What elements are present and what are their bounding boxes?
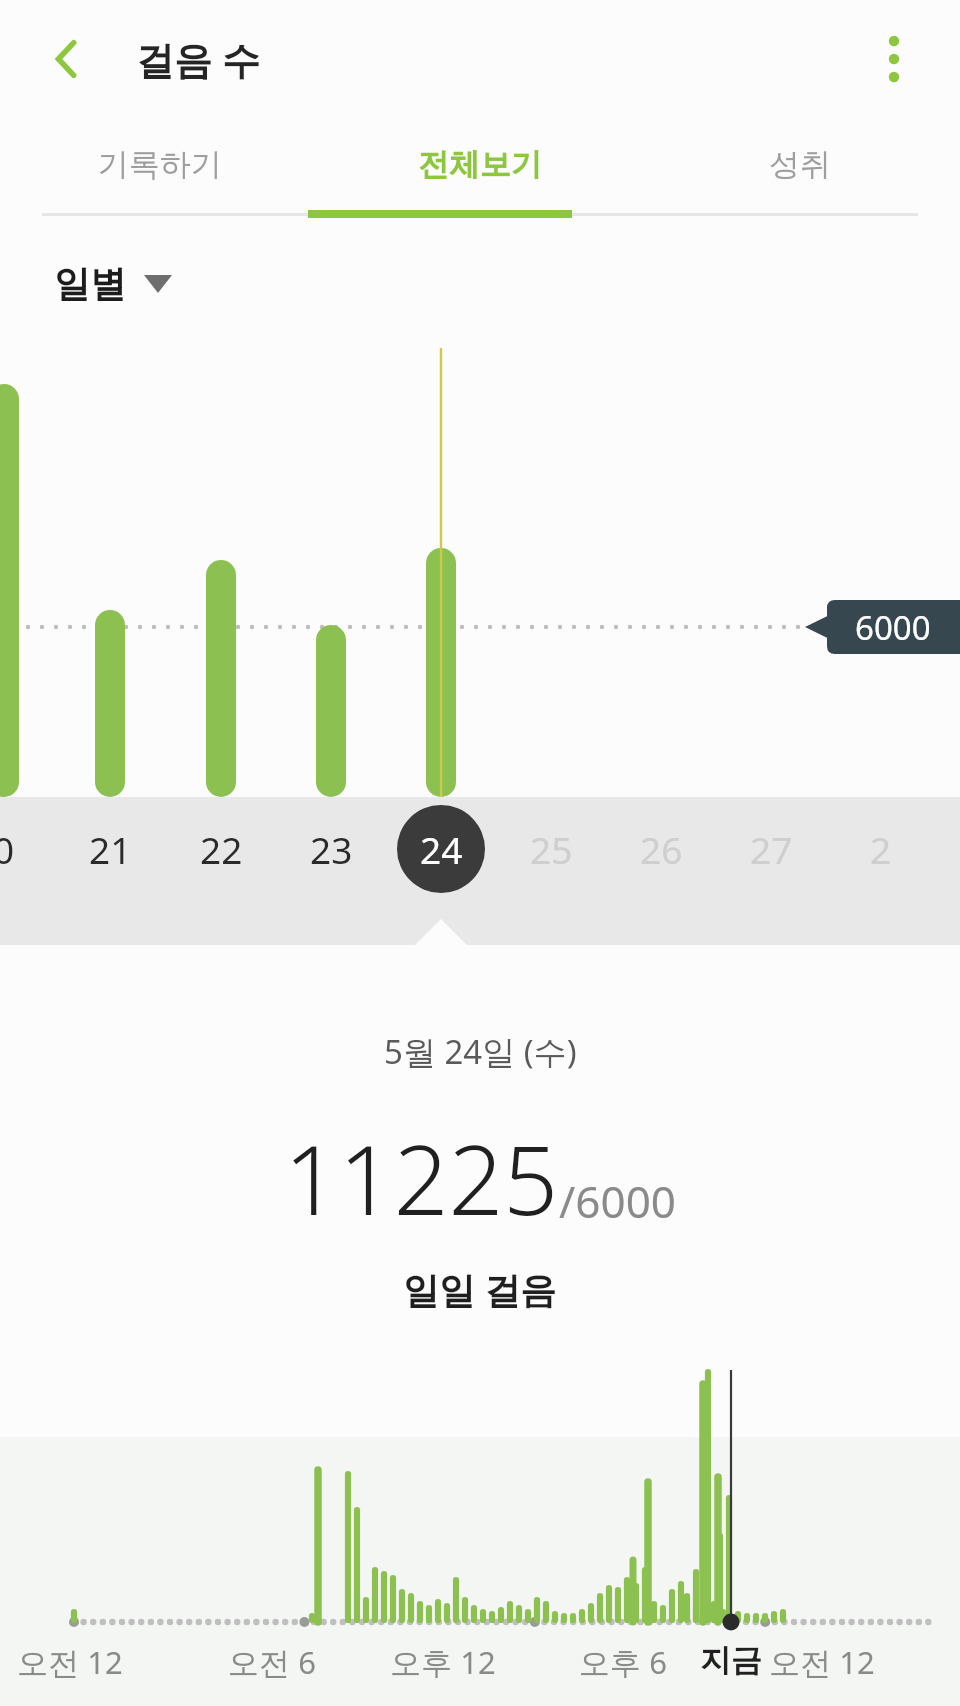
staticText: 27 xyxy=(750,824,793,874)
button[interactable]: 27 xyxy=(727,805,815,893)
staticText: 11225 xyxy=(284,1112,559,1243)
button[interactable]: 일별 xyxy=(54,261,172,306)
staticText: 21 xyxy=(89,824,132,874)
staticText: 6000 xyxy=(855,605,931,650)
staticText: 2 xyxy=(870,824,892,874)
staticText: 26 xyxy=(640,824,683,874)
staticText: 22 xyxy=(200,824,243,874)
button[interactable]: 26 xyxy=(617,805,705,893)
staticText: 24 xyxy=(420,824,463,874)
staticText: 25 xyxy=(530,824,573,874)
button[interactable]: 2 xyxy=(837,805,925,893)
button[interactable]: 22 xyxy=(177,805,265,893)
staticText: 오후 6 xyxy=(579,1641,667,1683)
staticText: 전체보기 xyxy=(418,145,542,184)
staticText: 일일 걸음 xyxy=(403,1265,557,1314)
button[interactable]: More options xyxy=(854,19,934,99)
staticText: 23 xyxy=(310,824,353,874)
button[interactable]: 성취 xyxy=(640,118,960,210)
staticText: /6000 xyxy=(559,1171,677,1231)
button[interactable]: 21 xyxy=(66,805,154,893)
button[interactable]: 기록하기 xyxy=(0,118,320,210)
staticText: 오후 12 xyxy=(390,1641,496,1683)
button[interactable]: 24 xyxy=(397,805,485,893)
staticText: 기록하기 xyxy=(98,145,222,184)
staticText: 오전 12 xyxy=(17,1641,123,1683)
button[interactable]: 전체보기 xyxy=(320,118,640,210)
button[interactable]: 23 xyxy=(287,805,375,893)
button[interactable]: 0 xyxy=(0,805,48,893)
staticText: 걸음 수 xyxy=(136,33,260,85)
staticText: 성취 xyxy=(769,145,831,184)
button[interactable]: Back xyxy=(30,21,106,97)
staticText: 지금 xyxy=(700,1641,762,1680)
staticText: 일별 xyxy=(54,261,126,306)
button[interactable]: 25 xyxy=(507,805,595,893)
staticText: 오전 12 xyxy=(769,1641,875,1683)
staticText: 0 xyxy=(0,824,15,874)
staticText: 5월 24일 (수) xyxy=(384,1029,577,1074)
staticText: 오전 6 xyxy=(228,1641,316,1683)
